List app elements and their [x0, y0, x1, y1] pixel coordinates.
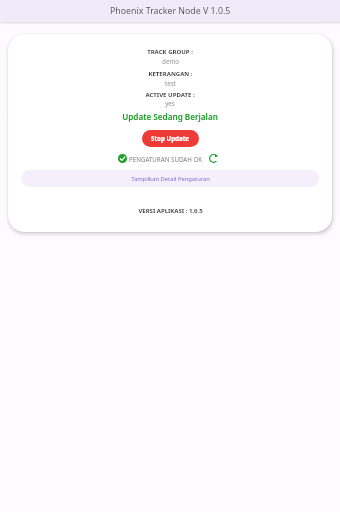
staticText: yes — [165, 99, 175, 107]
button[interactable]: Stop Update — [142, 130, 199, 147]
staticText: VERSI APLIKASI : 1.0.5 — [138, 207, 203, 215]
staticText: Stop Update — [151, 134, 190, 142]
staticText: Phoenix Tracker Node V 1.0.5 — [110, 5, 231, 17]
staticText: PENGATURAN SUDAH OK — [129, 155, 203, 163]
button[interactable]: Refresh — [208, 153, 219, 164]
staticText: KETERANGAN : — [148, 70, 193, 78]
button[interactable]: Tampilkan Detail Pengaturan — [21, 170, 319, 187]
staticText: demo — [162, 57, 179, 65]
staticText: ACTIVE UPDATE : — [145, 91, 195, 99]
staticText: Update Sedang Berjalan — [122, 111, 218, 122]
staticText: Tampilkan Detail Pengaturan — [131, 175, 210, 183]
staticText: TRACK GROUP : — [147, 48, 193, 56]
staticText: test — [165, 79, 176, 87]
